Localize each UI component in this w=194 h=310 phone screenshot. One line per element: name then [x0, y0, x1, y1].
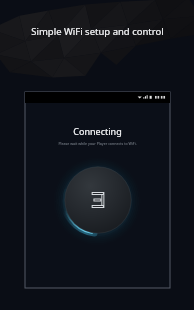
staticText: Please wait while your Player connects t… [33, 141, 162, 146]
other: Player status [57, 159, 139, 241]
staticText: Simple WiFi setup and control [31, 25, 164, 38]
staticText: Connecting [25, 125, 170, 137]
button[interactable]: Connecting [25, 92, 170, 288]
